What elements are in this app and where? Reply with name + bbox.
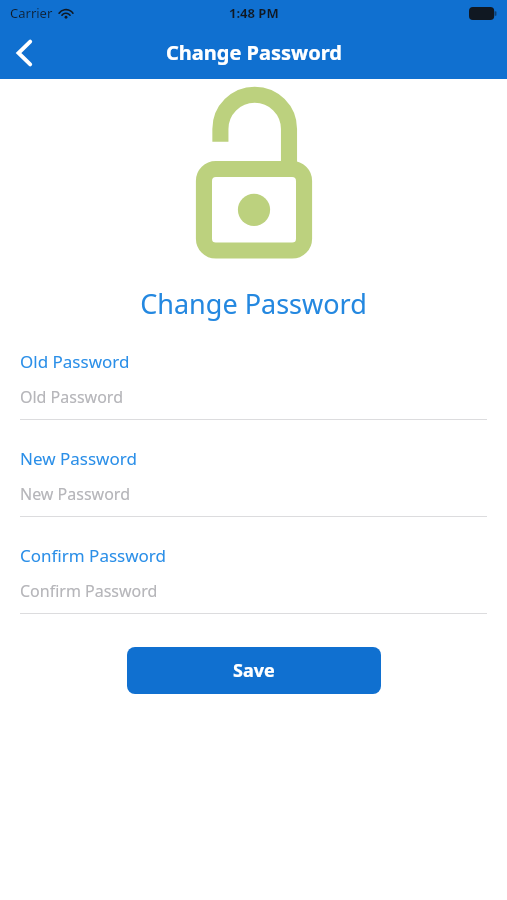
button[interactable]: Confirm Password	[0, 580, 507, 614]
staticText: 1:48 PM	[229, 4, 279, 22]
staticText: Confirm Password	[20, 544, 166, 567]
staticText: Carrier	[10, 4, 53, 22]
staticText: New Password	[20, 483, 130, 505]
staticText: Confirm Password	[20, 580, 158, 602]
staticText: Change Password	[166, 39, 342, 66]
staticText: Save	[233, 658, 275, 683]
staticText: Old Password	[20, 350, 130, 373]
button[interactable]: Save	[127, 647, 381, 694]
staticText: New Password	[20, 447, 137, 470]
staticText: Old Password	[20, 386, 123, 408]
staticText: Change Password	[0, 285, 507, 322]
button[interactable]: Back	[0, 29, 48, 77]
button[interactable]: Old Password	[0, 386, 507, 420]
button[interactable]: New Password	[0, 483, 507, 517]
